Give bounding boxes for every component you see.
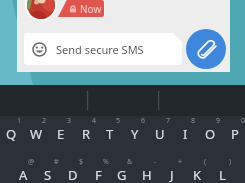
staticText: O	[205, 125, 216, 143]
staticText: #	[54, 157, 59, 167]
staticText: 7	[166, 116, 171, 126]
staticText: 5	[116, 116, 121, 126]
staticText: J	[170, 166, 174, 183]
button[interactable]	[85, 158, 110, 183]
button[interactable]	[98, 117, 123, 147]
staticText: Y	[131, 125, 139, 143]
staticText: @	[28, 157, 35, 167]
button[interactable]	[185, 158, 210, 183]
staticText: 3	[67, 116, 72, 126]
staticText: 6	[141, 116, 146, 126]
button[interactable]	[160, 158, 185, 183]
staticText: L	[219, 166, 226, 183]
button[interactable]	[0, 117, 24, 147]
staticText: 1	[17, 116, 22, 126]
staticText: G	[117, 166, 127, 183]
staticText: +	[178, 157, 183, 167]
staticText: E	[57, 125, 65, 143]
staticText: 0	[241, 116, 245, 126]
staticText: F	[95, 166, 102, 183]
staticText: Q	[6, 125, 17, 143]
staticText: P	[231, 125, 239, 143]
staticText: D	[68, 166, 78, 183]
staticText: H	[142, 166, 152, 183]
staticText: T	[106, 125, 114, 143]
staticText: U	[155, 125, 165, 143]
staticText: S	[44, 166, 52, 183]
staticText: (	[204, 157, 207, 167]
button[interactable]	[110, 158, 135, 183]
button[interactable]	[48, 117, 73, 147]
button[interactable]: Send secure SMS	[24, 33, 182, 65]
button[interactable]: Attach	[186, 29, 226, 69]
button[interactable]	[123, 117, 148, 147]
staticText: R	[82, 125, 91, 143]
staticText: 8	[191, 116, 196, 126]
button[interactable]	[35, 158, 60, 183]
staticText: 2	[42, 116, 47, 126]
staticText: 9	[216, 116, 221, 126]
button[interactable]	[11, 158, 36, 183]
button[interactable]	[60, 158, 85, 183]
button[interactable]	[173, 117, 198, 147]
button[interactable]	[209, 158, 234, 183]
staticText: Send secure SMS	[56, 42, 144, 57]
button[interactable]	[23, 117, 48, 147]
staticText: -	[154, 157, 157, 167]
staticText: %	[103, 157, 109, 167]
button[interactable]	[135, 158, 160, 183]
staticText: K	[193, 166, 202, 183]
staticText: Now	[80, 2, 102, 16]
button[interactable]	[222, 117, 245, 147]
staticText: )	[229, 157, 232, 167]
button[interactable]	[197, 117, 222, 147]
staticText: I	[183, 125, 188, 143]
button[interactable]	[73, 117, 98, 147]
button[interactable]	[148, 117, 173, 147]
staticText: &	[127, 157, 133, 167]
staticText: 4	[92, 116, 97, 126]
staticText: $	[79, 157, 84, 167]
staticText: A	[19, 166, 28, 183]
staticText: W	[30, 125, 43, 143]
